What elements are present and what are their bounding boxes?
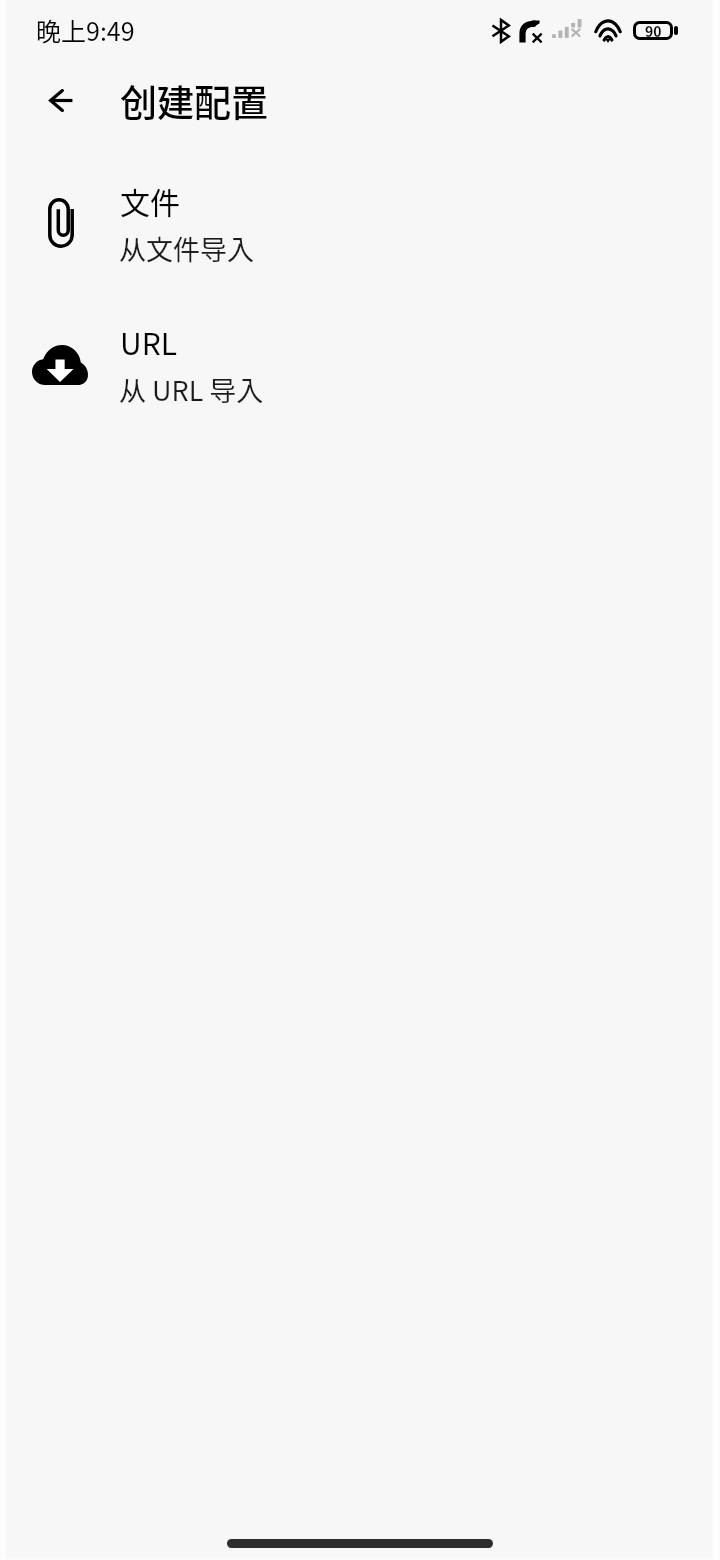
- staticText: 晚上9:49: [36, 12, 135, 48]
- button[interactable]: URL: [0, 316, 720, 457]
- staticText: 文件: [120, 179, 180, 222]
- staticText: 从文件导入: [119, 229, 254, 268]
- button[interactable]: Back: [25, 76, 97, 124]
- button[interactable]: 文件: [0, 175, 720, 316]
- staticText: 90: [645, 21, 662, 40]
- staticText: 从 URL 导入: [119, 370, 264, 409]
- staticText: URL: [120, 320, 177, 363]
- staticText: 创建配置: [120, 74, 268, 128]
